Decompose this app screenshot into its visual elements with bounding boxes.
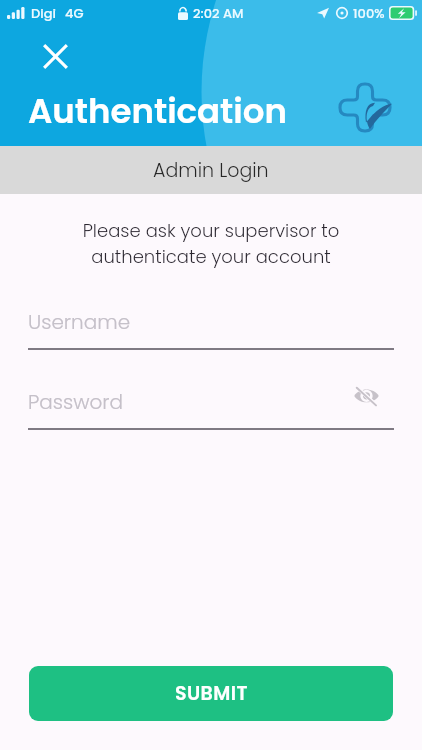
button[interactable]: Show password	[354, 385, 379, 406]
staticText: Authentication	[28, 87, 287, 135]
button[interactable]: Username	[28, 311, 394, 352]
button[interactable]: SUBMIT	[29, 666, 393, 721]
button[interactable]: Close	[40, 41, 71, 72]
staticText: 2:02 AM	[193, 4, 244, 22]
staticText: Admin Login	[153, 157, 269, 184]
staticText: Please ask your supervisor to authentica…	[0, 218, 422, 270]
staticText: Password	[28, 388, 124, 416]
staticText: 100%	[353, 4, 385, 22]
staticText: Digi	[31, 4, 56, 22]
button[interactable]: Password	[28, 391, 394, 432]
staticText: Username	[28, 308, 131, 336]
staticText: SUBMIT	[175, 680, 248, 707]
staticText: 4G	[65, 4, 84, 22]
